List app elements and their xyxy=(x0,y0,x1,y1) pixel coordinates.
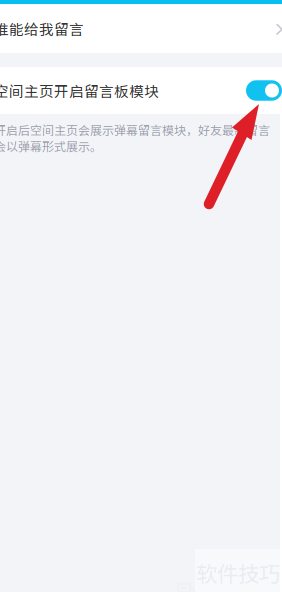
staticText: 空间主页开启留言板模块 xyxy=(0,80,159,101)
staticText: 软件技巧 xyxy=(196,557,280,588)
button[interactable]: 谁能给我留言 xyxy=(0,4,282,53)
staticText: 谁能给我留言 xyxy=(0,18,84,39)
staticText: 开启后空间主页会展示弹幕留言模块，好友最新留言会以弹幕形式展示。 xyxy=(0,121,270,155)
button[interactable]: 开启留言板模块 xyxy=(246,80,282,101)
